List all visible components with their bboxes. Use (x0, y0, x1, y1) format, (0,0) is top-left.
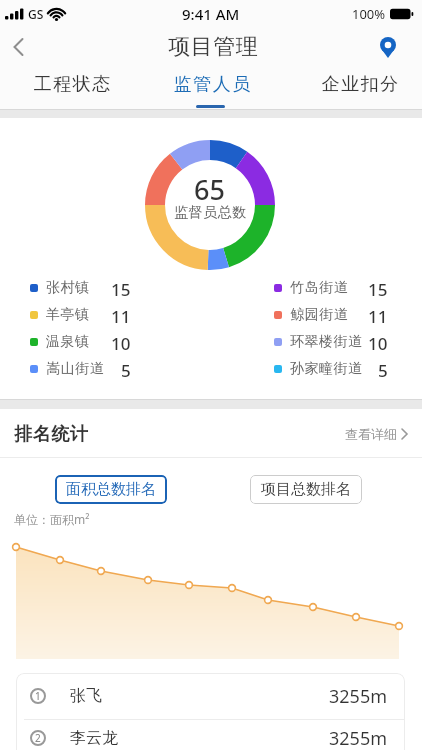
button[interactable]: 项目总数排名 (250, 475, 362, 504)
staticText: 羊亭镇 (46, 306, 90, 324)
staticText: 3255m (329, 726, 388, 750)
button[interactable]: 1 (16, 673, 405, 719)
staticText: 温泉镇 (46, 333, 90, 351)
button[interactable]: 企业扣分 (281, 66, 422, 109)
button[interactable] (374, 33, 402, 61)
staticText: 鲸园街道 (290, 306, 348, 324)
staticText: 9:41 AM (182, 4, 240, 24)
staticText: 监督员总数 (174, 204, 247, 222)
staticText: 100% (352, 5, 386, 23)
staticText: 环翠楼街道 (290, 333, 363, 351)
staticText: 张村镇 (46, 279, 90, 297)
staticText: 竹岛街道 (290, 279, 348, 297)
staticText: 65 (194, 171, 225, 208)
staticText: 10 (111, 332, 131, 352)
staticText: 3255m (329, 684, 388, 709)
staticText: GS (28, 6, 44, 22)
staticText: 15 (368, 278, 388, 298)
staticText: 2 (35, 731, 41, 745)
button[interactable]: 工程状态 (0, 66, 140, 109)
button[interactable]: 面积总数排名 (55, 475, 167, 504)
staticText: 查看详细 (345, 426, 397, 442)
staticText: 5 (378, 359, 388, 379)
button[interactable]: 2 (16, 720, 405, 750)
staticText: 单位：面积m² (14, 511, 90, 527)
staticText: 项目管理 (168, 33, 258, 61)
staticText: 张飞 (70, 686, 102, 706)
button[interactable]: 查看详细 (345, 426, 408, 442)
staticText: 监管人员 (173, 73, 251, 96)
staticText: 10 (368, 332, 388, 352)
staticText: 嵩山街道 (46, 360, 104, 378)
staticText: 15 (111, 278, 131, 298)
staticText: 李云龙 (70, 728, 118, 748)
staticText: 11 (111, 305, 131, 325)
staticText: 项目总数排名 (261, 480, 351, 499)
staticText: 排名统计 (14, 423, 88, 446)
staticText: 孙家疃街道 (290, 360, 363, 378)
staticText: 11 (368, 305, 388, 325)
staticText: 面积总数排名 (66, 480, 156, 499)
staticText: 5 (121, 359, 131, 379)
staticText: 1 (35, 689, 41, 703)
button[interactable] (0, 29, 36, 65)
button[interactable]: 监管人员 (140, 66, 281, 109)
staticText: 企业扣分 (321, 73, 399, 96)
staticText: 工程状态 (33, 73, 111, 96)
